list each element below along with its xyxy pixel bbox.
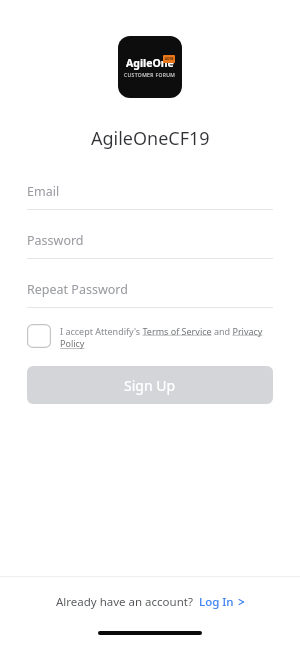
staticText: AONE xyxy=(165,57,174,61)
staticText: AgileOne xyxy=(126,56,174,70)
button[interactable]: Accept terms checkbox xyxy=(27,324,51,348)
staticText: AgileOneCF19 xyxy=(91,126,210,151)
button[interactable]: Password xyxy=(27,232,273,259)
staticText: I accept Attendify's Terms of Service an… xyxy=(60,325,273,350)
staticText: Sign Up xyxy=(124,376,176,395)
staticText: Email xyxy=(27,183,60,200)
staticText: Password xyxy=(27,232,84,249)
button[interactable]: Already have an account? xyxy=(48,588,253,616)
other: AgileOne Customer Forum logo xyxy=(118,36,182,98)
button[interactable]: Repeat Password xyxy=(27,281,273,308)
button[interactable]: Email xyxy=(27,183,273,210)
staticText: Already have an account? xyxy=(56,594,193,610)
button[interactable]: Accept terms checkbox xyxy=(27,324,273,350)
staticText: Repeat Password xyxy=(27,281,128,298)
staticText: Log In xyxy=(199,594,234,610)
staticText: CUSTOMER FORUM xyxy=(124,72,176,79)
button[interactable]: Sign Up xyxy=(27,366,273,404)
